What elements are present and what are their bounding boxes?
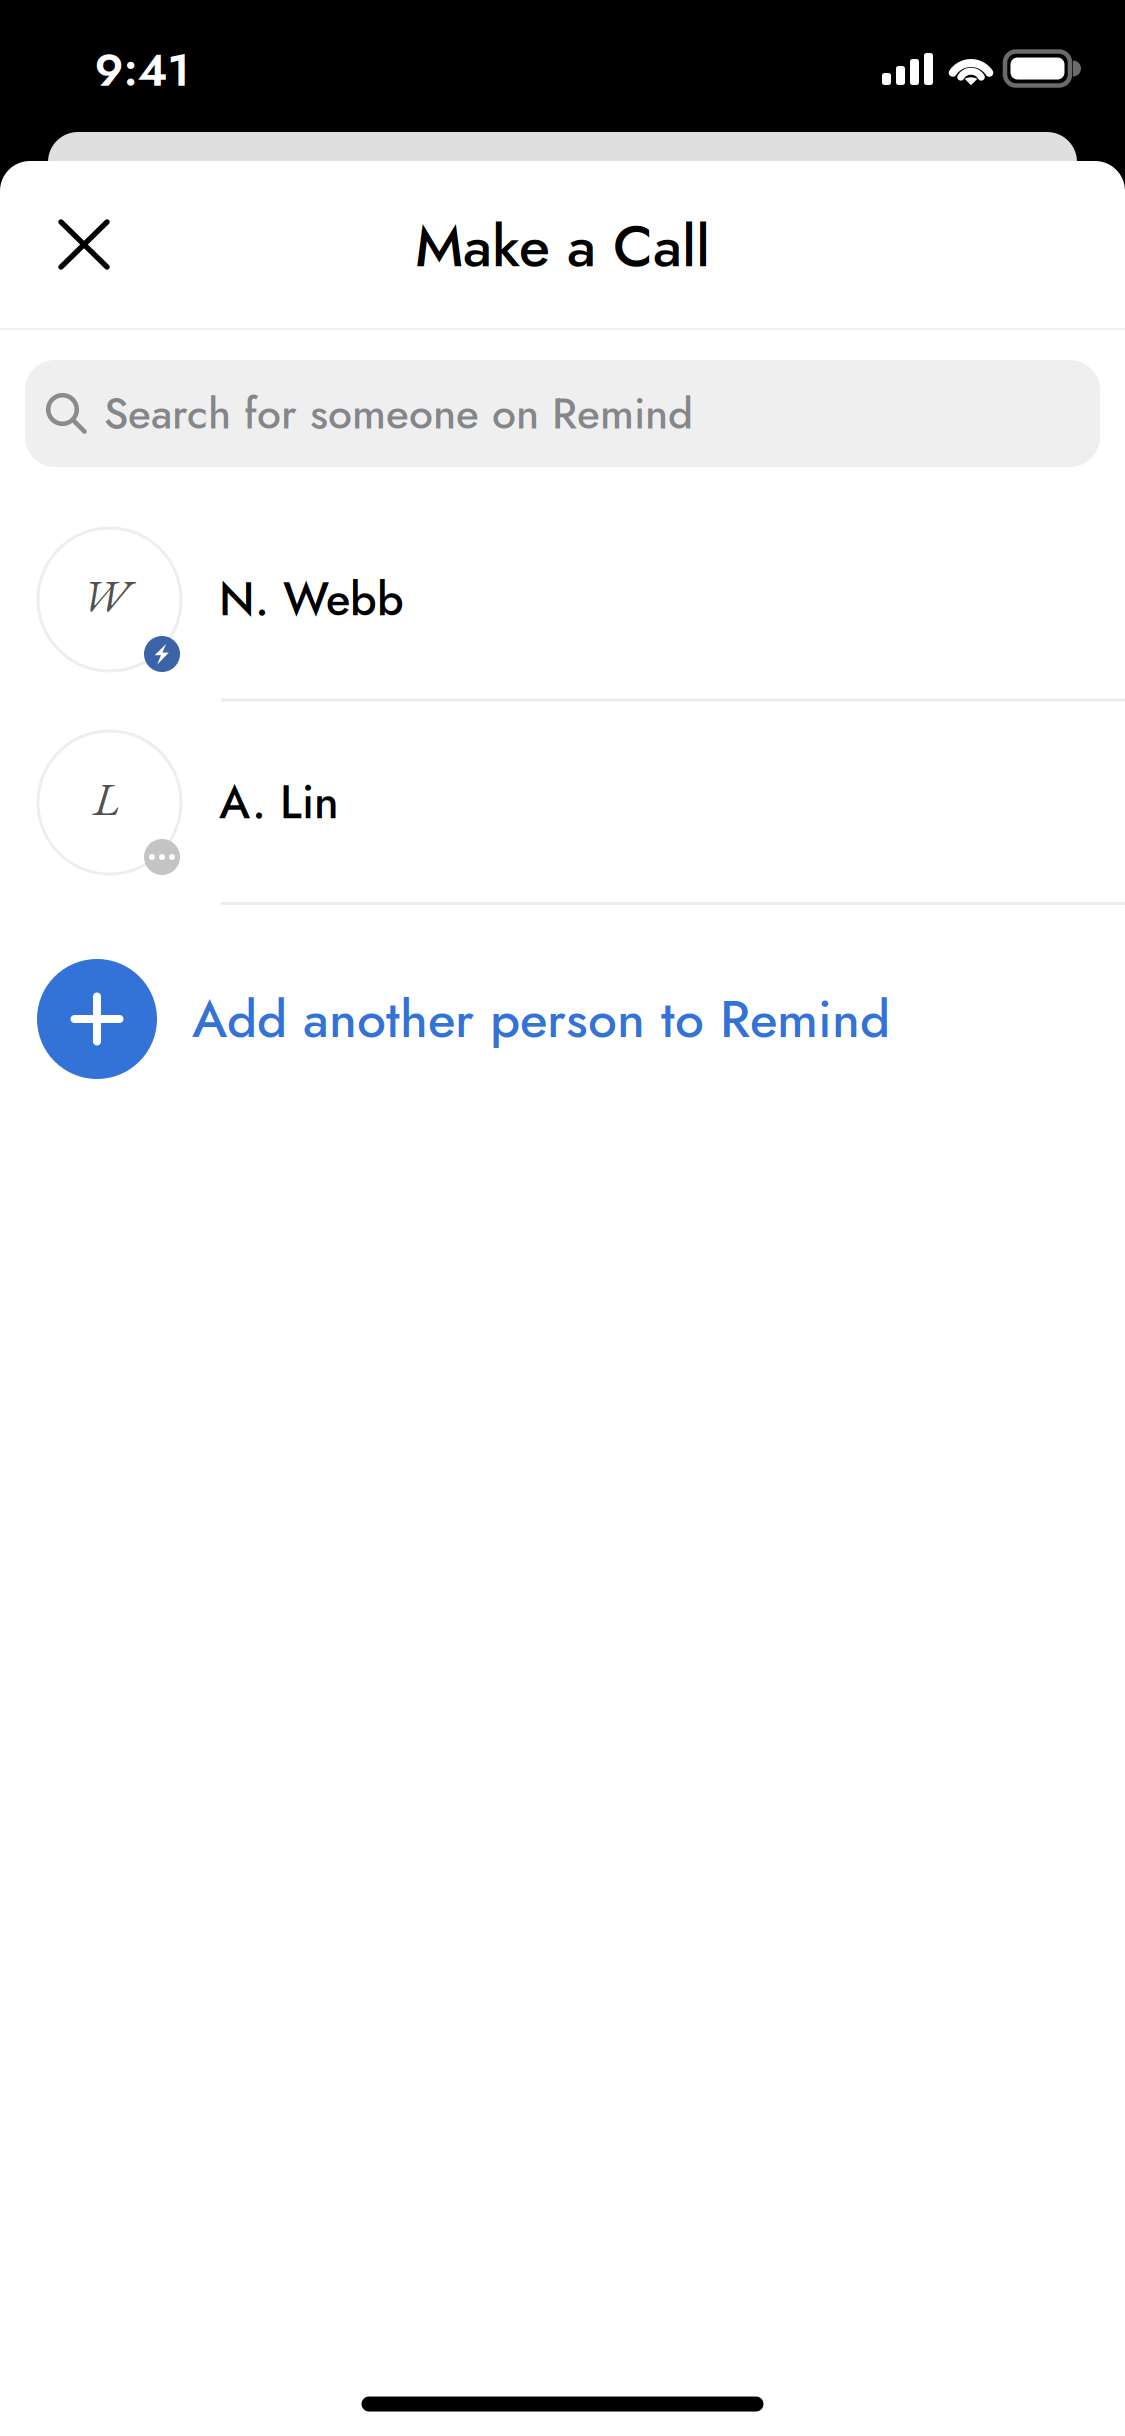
button[interactable]: W xyxy=(0,504,1125,694)
staticText: N. Webb xyxy=(219,567,404,632)
button[interactable]: Close xyxy=(32,192,136,296)
staticText: 9:41 xyxy=(94,37,189,103)
staticText: Add another person to Remind xyxy=(192,982,890,1056)
button[interactable]: Add another person to Remind xyxy=(0,939,1125,1099)
staticText: Make a Call xyxy=(415,204,710,288)
staticText: Search for someone on Remind xyxy=(104,382,693,444)
staticText: L xyxy=(93,769,119,829)
button[interactable]: L xyxy=(0,707,1125,897)
button[interactable]: Search for someone on Remind xyxy=(25,360,1100,467)
staticText: W xyxy=(82,566,130,626)
staticText: A. Lin xyxy=(219,770,339,835)
